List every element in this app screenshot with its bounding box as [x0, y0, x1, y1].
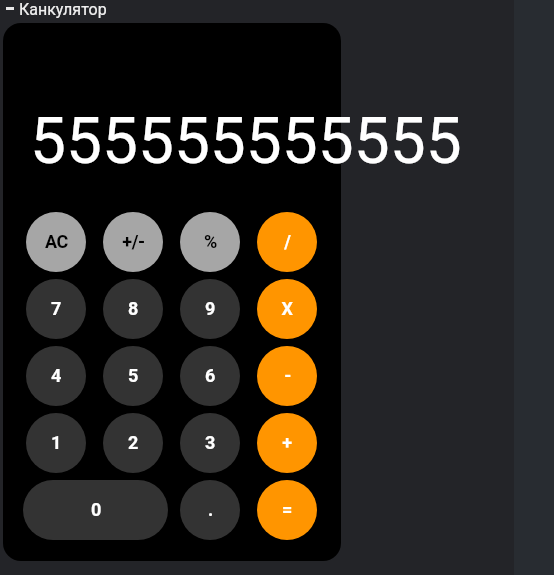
button[interactable]: Digit 3	[180, 413, 240, 473]
staticText: X	[281, 298, 293, 319]
staticText: 5	[128, 365, 138, 386]
button[interactable]: Add	[257, 413, 317, 473]
button[interactable]: Multiply	[257, 279, 317, 339]
staticText: 6	[205, 365, 215, 386]
button[interactable]: Percent	[180, 212, 240, 272]
staticText: 0	[91, 499, 101, 520]
button[interactable]: Divide	[257, 212, 317, 272]
button[interactable]: All clear	[26, 212, 86, 272]
staticText: 8	[128, 298, 138, 319]
button[interactable]: Digit 9	[180, 279, 240, 339]
button[interactable]: Minimize	[6, 0, 107, 20]
staticText: %	[204, 231, 217, 252]
staticText: -	[284, 365, 291, 386]
staticText: 1	[51, 432, 61, 453]
button[interactable]: Digit 1	[26, 413, 86, 473]
button[interactable]: Equals	[257, 480, 317, 540]
button[interactable]: Digit 5	[103, 346, 163, 406]
staticText: .	[208, 499, 213, 520]
button[interactable]: Decimal point	[180, 480, 240, 540]
button[interactable]: Subtract	[257, 346, 317, 406]
button[interactable]: Digit 0	[23, 480, 168, 540]
button[interactable]: Digit 4	[26, 346, 86, 406]
staticText: +/-	[122, 231, 145, 252]
button[interactable]: Digit 7	[26, 279, 86, 339]
button[interactable]: Digit 6	[180, 346, 240, 406]
staticText: 4	[51, 365, 61, 386]
staticText: +	[282, 432, 292, 453]
staticText: Канкулятор	[19, 0, 107, 19]
button[interactable]: Toggle sign	[103, 212, 163, 272]
staticText: AC	[45, 231, 68, 252]
staticText: /	[284, 231, 291, 252]
staticText: 9	[205, 298, 215, 319]
button[interactable]: Digit 2	[103, 413, 163, 473]
staticText: 3	[205, 432, 215, 453]
staticText: 7	[51, 298, 61, 319]
staticText: 2	[128, 432, 138, 453]
staticText: =	[282, 499, 292, 520]
button[interactable]: Digit 8	[103, 279, 163, 339]
staticText: 555555555555	[30, 104, 462, 179]
